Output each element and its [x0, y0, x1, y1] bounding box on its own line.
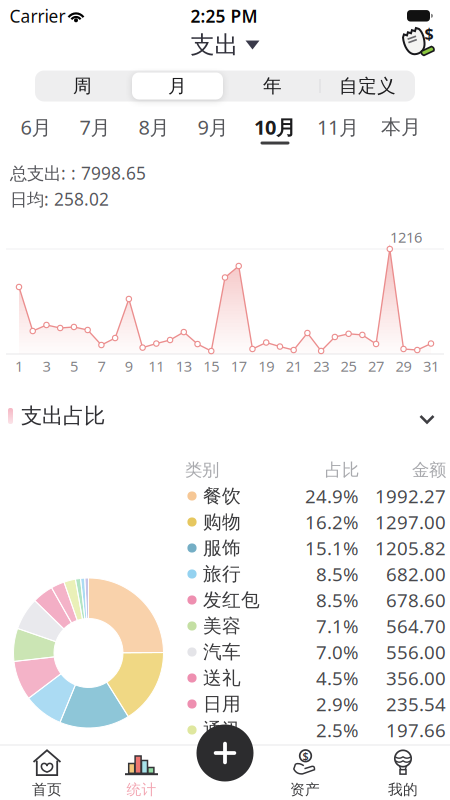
staticText: 资产 — [290, 780, 320, 798]
button[interactable]: Bills — [399, 24, 437, 60]
button[interactable]: 7月 — [68, 110, 122, 144]
button[interactable]: 我的 — [361, 751, 445, 797]
staticText: 11 — [148, 356, 164, 376]
button[interactable]: 支出 — [190, 30, 259, 60]
staticText: 年 — [263, 74, 282, 97]
staticText: 10月 — [254, 114, 296, 140]
staticText: 564.70 — [386, 614, 446, 638]
staticText: 9月 — [197, 114, 228, 140]
button[interactable]: 统计 — [99, 751, 183, 797]
staticText: 6月 — [20, 114, 51, 140]
staticText: 13 — [176, 356, 192, 376]
staticText: 日均: 258.02 — [10, 187, 109, 210]
staticText: 11月 — [317, 114, 359, 140]
staticText: 2:25 PM — [190, 4, 257, 27]
staticText: 15 — [203, 356, 219, 376]
staticText: 1 — [15, 356, 23, 376]
button[interactable]: 周 — [35, 70, 130, 101]
staticText: 23 — [313, 356, 329, 376]
staticText: 9 — [125, 356, 133, 376]
button[interactable]: 6月 — [9, 110, 63, 144]
staticText: 27 — [368, 356, 384, 376]
staticText: 日用 — [203, 692, 241, 715]
staticText: 自定义 — [339, 74, 396, 97]
staticText: 31 — [423, 356, 439, 376]
staticText: 支出 — [190, 30, 238, 60]
staticText: 8.5% — [316, 588, 359, 612]
staticText: 8.5% — [316, 562, 359, 586]
button[interactable]: 自定义 — [320, 70, 415, 101]
staticText: 29 — [395, 356, 411, 376]
staticText: 235.54 — [386, 692, 446, 716]
staticText: 24.9% — [305, 484, 359, 508]
staticText: 1992.27 — [375, 484, 446, 508]
staticText: 占比 — [325, 459, 359, 481]
button[interactable]: 8月 — [127, 110, 181, 144]
button[interactable]: Add — [196, 724, 253, 781]
staticText: 服饰 — [203, 536, 241, 559]
staticText: 1216 — [390, 227, 422, 247]
button[interactable]: 9月 — [186, 110, 240, 144]
staticText: 197.66 — [386, 718, 446, 742]
staticText: 统计 — [126, 780, 156, 798]
button[interactable]: 年 — [225, 70, 320, 101]
staticText: 7 — [97, 356, 105, 376]
button[interactable]: Collapse — [411, 403, 442, 434]
button[interactable]: 首页 — [5, 751, 89, 797]
staticText: 送礼 — [203, 666, 241, 689]
staticText: 15.1% — [305, 536, 359, 560]
staticText: 美容 — [203, 614, 241, 637]
staticText: 月 — [168, 74, 187, 97]
button[interactable]: 10月 — [248, 110, 302, 144]
staticText: 25 — [341, 356, 357, 376]
staticText: 总支出: : 7998.65 — [10, 161, 146, 184]
staticText: 21 — [286, 356, 302, 376]
staticText: 通讯 — [203, 718, 241, 741]
staticText: 周 — [73, 74, 92, 97]
staticText: 我的 — [388, 780, 418, 798]
staticText: 2.9% — [316, 692, 359, 716]
staticText: $ — [302, 749, 308, 763]
staticText: 17 — [231, 356, 247, 376]
staticText: 1205.82 — [375, 536, 446, 560]
staticText: 16.2% — [305, 510, 359, 534]
button[interactable]: 月 — [130, 70, 225, 101]
staticText: 678.60 — [386, 588, 446, 612]
staticText: 2.5% — [316, 718, 359, 742]
staticText: 19 — [258, 356, 274, 376]
staticText: Carrier — [9, 4, 65, 27]
staticText: 发红包 — [203, 588, 260, 611]
staticText: 556.00 — [386, 640, 446, 664]
staticText: 7.0% — [316, 640, 359, 664]
staticText: 首页 — [32, 780, 62, 798]
staticText: 4.5% — [316, 666, 359, 690]
staticText: 金额 — [412, 459, 446, 481]
staticText: 餐饮 — [203, 484, 241, 507]
staticText: 类别 — [185, 459, 219, 481]
button[interactable]: 11月 — [311, 110, 365, 144]
staticText: 356.00 — [386, 666, 446, 690]
staticText: 本月 — [381, 115, 421, 139]
staticText: 5 — [70, 356, 78, 376]
button[interactable]: $ — [263, 751, 347, 797]
staticText: 7.1% — [316, 614, 359, 638]
staticText: 3 — [42, 356, 50, 376]
staticText: 汽车 — [203, 640, 241, 663]
button[interactable]: 本月 — [374, 110, 428, 144]
staticText: 682.00 — [386, 562, 446, 586]
staticText: 支出占比 — [21, 403, 105, 429]
staticText: 购物 — [203, 510, 241, 533]
staticText: $ — [424, 23, 433, 44]
staticText: 旅行 — [203, 562, 241, 585]
staticText: 8月 — [138, 114, 169, 140]
staticText: 1297.00 — [375, 510, 446, 534]
staticText: 7月 — [79, 114, 110, 140]
